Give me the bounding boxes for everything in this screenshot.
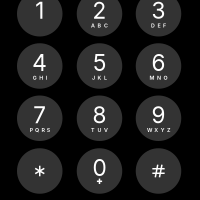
staticText: Q [35, 127, 39, 133]
staticText: 5 [93, 49, 106, 76]
staticText: W [147, 127, 152, 133]
staticText: U [97, 127, 101, 133]
staticText: 2 [92, 0, 106, 24]
staticText: X [154, 127, 158, 133]
staticText: H [39, 75, 43, 81]
staticText: L [104, 75, 107, 81]
staticText: B [97, 22, 101, 29]
staticText: C [104, 22, 108, 29]
staticText: 1 [35, 0, 44, 24]
button[interactable]: Pound [136, 148, 181, 194]
staticText: 9 [151, 101, 165, 129]
staticText: A [91, 22, 95, 29]
staticText: I [46, 75, 47, 81]
staticText: 6 [151, 49, 165, 76]
button[interactable]: 4 G H I [17, 43, 62, 89]
staticText: D [151, 22, 155, 29]
button[interactable]: 1 [17, 0, 62, 36]
staticText: F [163, 22, 166, 29]
button[interactable]: 8 T U V [77, 95, 122, 141]
button[interactable]: 7 P Q R S [17, 95, 62, 141]
staticText: V [104, 127, 108, 133]
staticText: Y [161, 127, 165, 133]
button[interactable]: 9 W X Y Z [136, 95, 181, 141]
staticText: N [157, 75, 161, 81]
staticText: K [97, 75, 101, 81]
staticText: 4 [32, 49, 47, 76]
staticText: S [47, 127, 50, 133]
button[interactable]: 0 plus [77, 148, 122, 194]
staticText: O [163, 75, 167, 81]
button[interactable]: 5 J K L [77, 43, 122, 89]
button[interactable]: 3 D E F [136, 0, 181, 36]
button[interactable]: Star [17, 148, 62, 194]
staticText: 3 [151, 0, 165, 24]
staticText: M [150, 75, 155, 81]
staticText: 7 [33, 101, 46, 129]
staticText: 0 [92, 154, 106, 181]
staticText: J [92, 75, 95, 81]
staticText: R [41, 127, 44, 133]
staticText: G [33, 75, 37, 81]
staticText: T [91, 127, 95, 133]
staticText: 8 [92, 101, 106, 129]
staticText: P [30, 127, 33, 133]
button[interactable]: 2 A B C [77, 0, 122, 36]
button[interactable]: 6 M N O [136, 43, 181, 89]
staticText: Z [167, 127, 170, 133]
staticText: E [157, 22, 160, 29]
